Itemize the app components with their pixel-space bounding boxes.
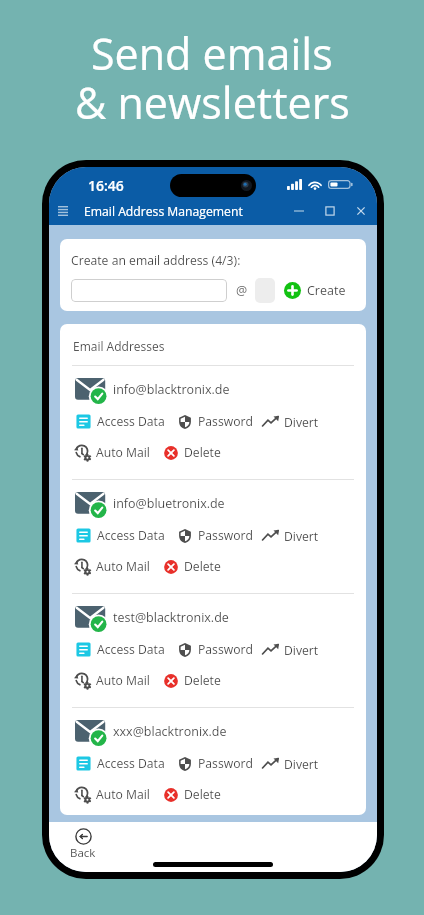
button[interactable]: Access Data: [75, 755, 165, 772]
staticText: Access Data: [97, 527, 165, 544]
staticText: Delete: [184, 444, 221, 461]
staticText: Email Address Management: [84, 203, 243, 220]
staticText: Access Data: [97, 413, 165, 430]
button[interactable]: Divert: [262, 755, 319, 773]
button[interactable]: Delete: [163, 444, 221, 461]
staticText: Auto Mail: [96, 558, 150, 575]
staticText: Password: [198, 527, 253, 544]
button[interactable]: Divert: [262, 413, 319, 431]
staticText: Access Data: [97, 755, 165, 772]
button[interactable]: Delete: [163, 786, 221, 803]
button[interactable]: Auto Mail: [74, 558, 150, 575]
button[interactable]: Delete: [163, 558, 221, 575]
staticText: Divert: [284, 642, 319, 659]
button[interactable]: Password: [177, 413, 253, 430]
staticText: Create an email address (4/3):: [71, 252, 241, 269]
button[interactable]: Divert: [262, 527, 319, 545]
staticText: @: [236, 282, 248, 299]
button[interactable]: Maximize: [314, 197, 345, 225]
button[interactable]: Access Data: [75, 413, 165, 430]
staticText: Delete: [184, 558, 221, 575]
staticText: test@blacktronix.de: [113, 609, 229, 626]
button[interactable]: Password: [177, 641, 253, 658]
button[interactable]: Access Data: [75, 527, 165, 544]
button[interactable]: Delete: [163, 672, 221, 689]
staticText: Email Addresses: [73, 338, 165, 354]
button[interactable]: Create: [284, 282, 346, 299]
staticText: Back: [70, 845, 96, 861]
staticText: xxx@blacktronix.de: [113, 723, 227, 740]
staticText: Delete: [184, 672, 221, 689]
staticText: Auto Mail: [96, 672, 150, 689]
button[interactable]: Back: [66, 824, 100, 865]
staticText: Auto Mail: [96, 786, 150, 803]
button[interactable]: Password: [177, 527, 253, 544]
staticText: Create: [307, 282, 346, 299]
button[interactable]: Minimize: [283, 197, 314, 225]
staticText: info@bluetronix.de: [113, 495, 225, 512]
staticText: Delete: [184, 786, 221, 803]
button[interactable]: Close: [345, 197, 377, 225]
button[interactable]: Divert: [262, 641, 319, 659]
staticText: Password: [198, 413, 253, 430]
button[interactable]: Auto Mail: [74, 786, 150, 803]
button[interactable]: Access Data: [75, 641, 165, 658]
button[interactable]: Password: [177, 755, 253, 772]
staticText: Password: [198, 755, 253, 772]
staticText: info@blacktronix.de: [113, 381, 230, 398]
staticText: Divert: [284, 756, 319, 773]
staticText: 16:46: [88, 176, 124, 195]
staticText: Divert: [284, 414, 319, 431]
button[interactable]: Auto Mail: [74, 444, 150, 461]
button[interactable]: Email name input: [71, 279, 227, 302]
button[interactable]: Auto Mail: [74, 672, 150, 689]
button[interactable]: Select domain: [255, 278, 275, 303]
staticText: Password: [198, 641, 253, 658]
staticText: Access Data: [97, 641, 165, 658]
staticText: Divert: [284, 528, 319, 545]
staticText: Auto Mail: [96, 444, 150, 461]
staticText: Send emails: [91, 24, 333, 83]
staticText: & newsletters: [75, 73, 350, 132]
button[interactable]: Menu: [53, 201, 73, 221]
